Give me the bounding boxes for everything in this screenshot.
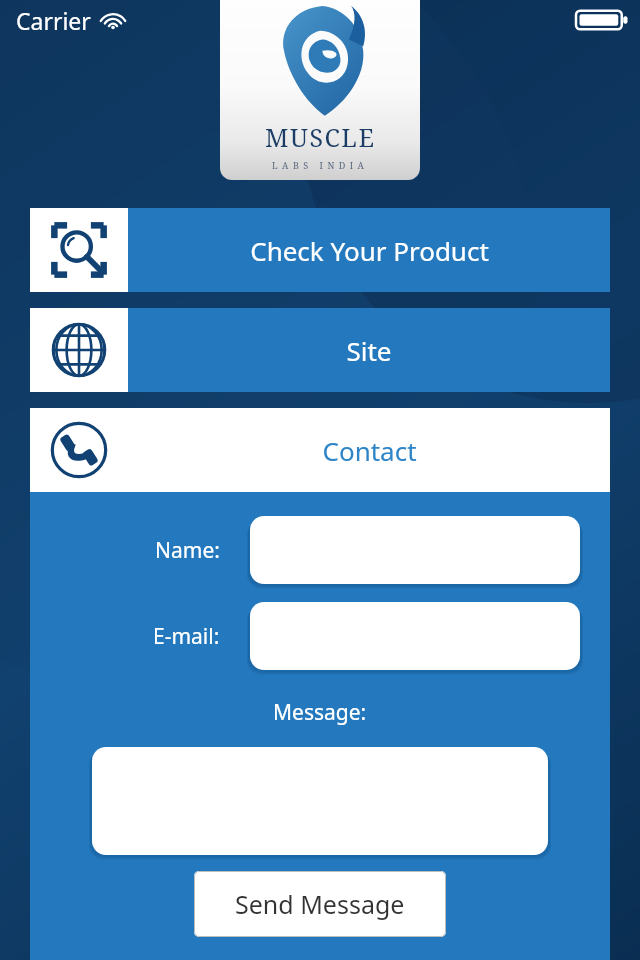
button[interactable] <box>250 516 580 584</box>
staticText: MUSCLE <box>265 120 376 154</box>
staticText: LABS INDIA <box>272 159 369 171</box>
button[interactable] <box>250 602 580 670</box>
button[interactable]: Contact <box>30 408 610 492</box>
button[interactable] <box>92 747 548 855</box>
staticText: Check Your Product <box>250 233 489 268</box>
button[interactable]: Site <box>30 308 610 392</box>
button[interactable]: Send Message <box>194 871 446 937</box>
other: Site <box>51 322 107 378</box>
staticText: Carrier <box>16 5 91 36</box>
other: Contact <box>50 421 108 479</box>
staticText: Contact <box>322 433 417 468</box>
staticText: Send Message <box>235 887 405 921</box>
staticText: Message: <box>273 698 367 727</box>
staticText: Site <box>346 333 392 368</box>
staticText: Name: <box>155 536 220 565</box>
staticText: E-mail: <box>153 622 220 651</box>
other: Scan product <box>50 221 108 279</box>
button[interactable]: Scan product <box>30 208 610 292</box>
